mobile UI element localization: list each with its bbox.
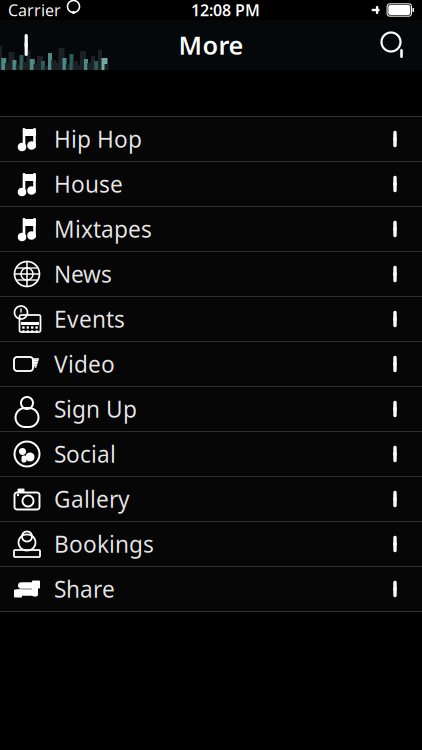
staticText: Mixtapes (54, 214, 152, 244)
staticText: 12:08 PM (191, 0, 260, 21)
staticText: News (54, 259, 112, 289)
button[interactable]: Back (6, 23, 50, 67)
button[interactable]: Social (0, 432, 422, 477)
button[interactable]: Mixtapes (0, 207, 422, 252)
staticText: Share (54, 574, 115, 604)
staticText: Sign Up (54, 394, 137, 424)
button[interactable]: Bookings (0, 522, 422, 567)
staticText: House (54, 169, 123, 199)
staticText: Gallery (54, 484, 130, 514)
staticText: Hip Hop (54, 124, 142, 154)
button[interactable]: Search (372, 23, 416, 67)
staticText: Bookings (54, 529, 154, 559)
button[interactable]: News (0, 252, 422, 297)
button[interactable]: Events (0, 297, 422, 342)
button[interactable]: Video (0, 342, 422, 387)
button[interactable]: Hip Hop (0, 117, 422, 162)
button[interactable]: Sign Up (0, 387, 422, 432)
button[interactable]: House (0, 162, 422, 207)
staticText: Video (54, 349, 115, 379)
button[interactable]: Share (0, 567, 422, 612)
staticText: More (178, 28, 243, 62)
button[interactable]: Gallery (0, 477, 422, 522)
staticText: Social (54, 439, 116, 469)
staticText: Events (54, 304, 125, 334)
staticText: Carrier (8, 0, 61, 21)
